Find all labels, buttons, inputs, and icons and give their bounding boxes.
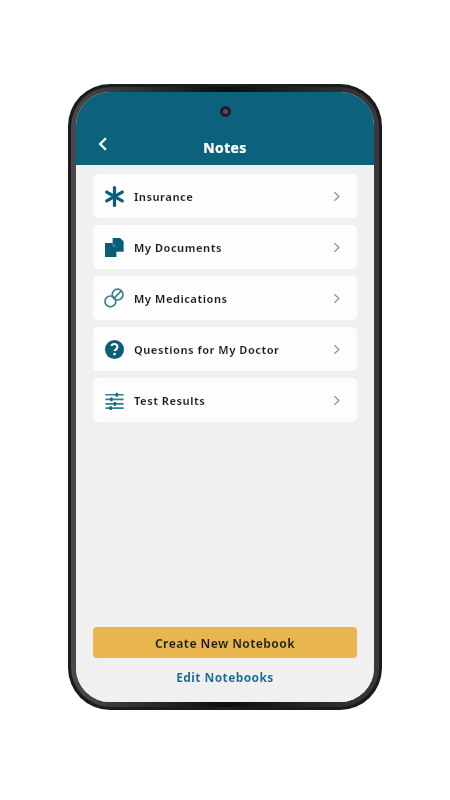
button[interactable]: Test Results [93, 378, 357, 422]
button[interactable]: Edit Notebooks [93, 658, 357, 696]
button[interactable]: Insurance [93, 174, 357, 218]
staticText: Create New Notebook [93, 635, 357, 651]
staticText: Questions for My Doctor [134, 342, 280, 357]
staticText: Insurance [134, 189, 194, 204]
button[interactable]: My Medications [93, 276, 357, 320]
staticText: Edit Notebooks [93, 669, 357, 685]
staticText: Notes [76, 138, 374, 157]
staticText: My Documents [134, 240, 223, 255]
button[interactable]: My Documents [93, 225, 357, 269]
button[interactable]: Questions for My Doctor [93, 327, 357, 371]
staticText: My Medications [134, 291, 228, 306]
button[interactable]: Create New Notebook [93, 627, 357, 658]
staticText: Test Results [134, 393, 206, 408]
button[interactable]: Back [86, 127, 120, 161]
